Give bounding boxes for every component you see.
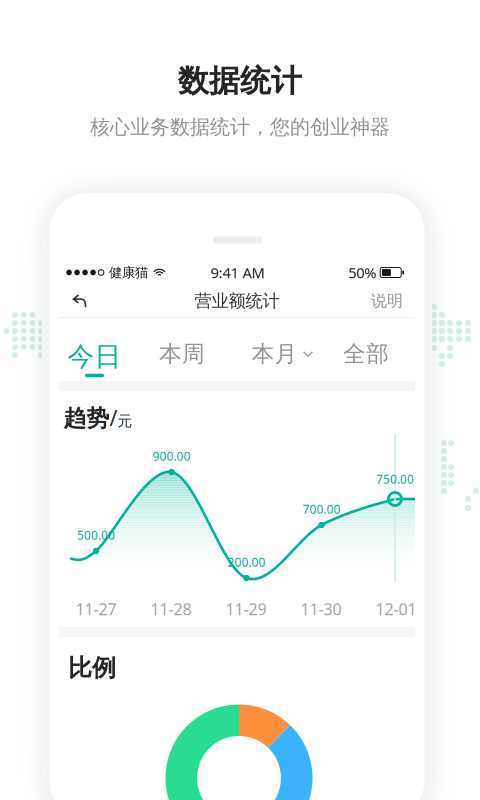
- staticText: 营业额统计: [194, 290, 279, 312]
- button[interactable]: 今日: [54, 318, 134, 381]
- staticText: /: [109, 404, 117, 432]
- staticText: 50%: [348, 263, 376, 282]
- staticText: 750.00: [376, 471, 414, 487]
- staticText: 今日: [67, 340, 121, 373]
- staticText: 数据统计: [178, 62, 302, 100]
- staticText: 全部: [343, 340, 389, 368]
- staticText: 元: [117, 412, 132, 430]
- staticText: 11-27: [75, 598, 116, 620]
- button[interactable]: 本月: [242, 327, 322, 380]
- staticText: 11-29: [225, 598, 266, 620]
- staticText: 趋势: [63, 405, 109, 432]
- staticText: 健康猫: [109, 264, 148, 281]
- staticText: 11-28: [150, 598, 191, 620]
- staticText: 9:41 AM: [210, 263, 264, 282]
- staticText: 本周: [159, 340, 205, 368]
- staticText: 12-01: [375, 598, 416, 620]
- staticText: 说明: [371, 291, 403, 311]
- staticText: 200.00: [227, 554, 265, 570]
- button[interactable]: 说明: [353, 284, 403, 318]
- staticText: 11-30: [300, 598, 341, 620]
- staticText: 500.00: [77, 527, 115, 543]
- staticText: 900.00: [152, 448, 190, 464]
- staticText: 700.00: [302, 501, 340, 517]
- staticText: 核心业务数据统计，您的创业神器: [90, 115, 390, 139]
- button[interactable]: 全部: [328, 327, 404, 380]
- button[interactable]: 本周: [144, 327, 220, 380]
- staticText: 本月: [251, 340, 297, 368]
- staticText: 比例: [68, 653, 116, 683]
- button[interactable]: 返回: [59, 284, 101, 318]
